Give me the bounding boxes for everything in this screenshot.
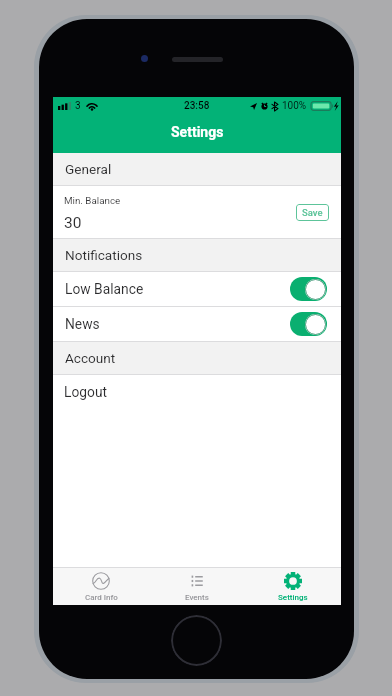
button[interactable]: Events [149, 568, 245, 605]
staticText: Low Balance [65, 281, 144, 297]
button[interactable]: Card Info [53, 568, 149, 605]
staticText: Settings [171, 124, 224, 140]
staticText: 100% [282, 100, 307, 112]
staticText: Logout [64, 384, 108, 400]
button[interactable]: Min. Balance [53, 186, 341, 238]
button[interactable]: Save [296, 204, 329, 221]
staticText: Save [302, 207, 323, 218]
button[interactable]: Low Balance [53, 272, 341, 306]
staticText: 3 [75, 100, 81, 112]
staticText: Settings [278, 593, 308, 602]
staticText: News [65, 316, 100, 332]
button[interactable]: Toggle News [290, 312, 327, 336]
staticText: Min. Balance [64, 195, 121, 206]
staticText: General [65, 161, 112, 177]
button[interactable]: Logout [53, 375, 341, 410]
staticText: Account [65, 350, 116, 366]
staticText: 23:58 [184, 100, 210, 112]
button[interactable]: News [53, 307, 341, 341]
button[interactable]: Settings [245, 568, 341, 605]
staticText: Notifications [65, 247, 143, 263]
staticText: Events [185, 593, 209, 602]
button[interactable]: Toggle Low Balance [290, 277, 327, 301]
staticText: Card Info [85, 593, 118, 602]
staticText: 30 [64, 214, 82, 232]
